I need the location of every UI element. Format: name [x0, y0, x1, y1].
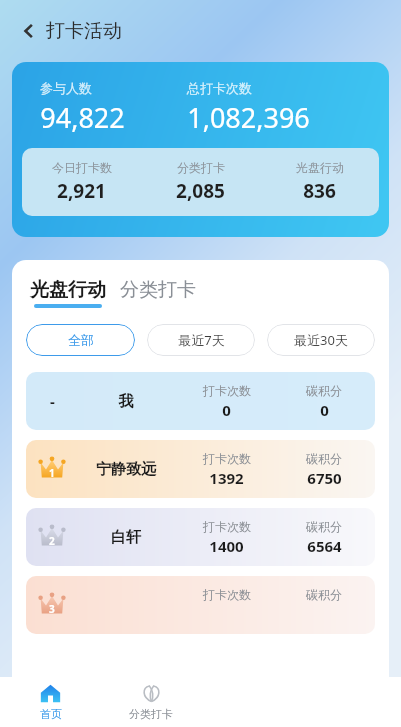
- staticText: 首页: [40, 707, 62, 721]
- staticText: 2,921: [57, 178, 106, 204]
- staticText: 94,822: [40, 99, 125, 136]
- staticText: 0: [320, 400, 329, 420]
- staticText: 836: [303, 178, 336, 204]
- button[interactable]: 全部: [26, 324, 135, 356]
- staticText: 打卡次数: [203, 519, 251, 534]
- staticText: 碳积分: [306, 451, 342, 466]
- staticText: 白轩: [78, 528, 174, 547]
- staticText: 全部: [68, 332, 94, 348]
- button[interactable]: -: [26, 372, 375, 430]
- staticText: 打卡次数: [203, 383, 251, 398]
- button[interactable]: 光盘行动: [30, 278, 106, 308]
- staticText: 打卡活动: [46, 19, 122, 43]
- staticText: 3: [49, 602, 55, 616]
- button[interactable]: 3: [26, 576, 375, 634]
- button[interactable]: 分类打卡: [101, 677, 201, 727]
- staticText: 6750: [307, 468, 342, 488]
- button[interactable]: Back: [14, 16, 44, 46]
- staticText: 最近30天: [294, 331, 348, 349]
- staticText: 分类打卡: [120, 278, 196, 302]
- staticText: 2: [49, 534, 55, 548]
- button[interactable]: 首页: [0, 677, 101, 727]
- staticText: 6564: [307, 536, 342, 556]
- staticText: 0: [222, 400, 231, 420]
- staticText: 分类打卡: [129, 707, 173, 721]
- staticText: 光盘行动: [296, 160, 344, 175]
- staticText: 宁静致远: [78, 460, 174, 479]
- staticText: 碳积分: [306, 519, 342, 534]
- staticText: 打卡次数: [203, 587, 251, 602]
- button[interactable]: 2: [26, 508, 375, 566]
- staticText: 分类打卡: [177, 160, 225, 175]
- staticText: 1,082,396: [187, 99, 310, 136]
- staticText: 光盘行动: [30, 278, 106, 302]
- button[interactable]: 最近30天: [267, 324, 375, 356]
- staticText: 碳积分: [306, 587, 342, 602]
- button[interactable]: 最近7天: [147, 324, 255, 356]
- staticText: 总打卡次数: [187, 80, 252, 96]
- button[interactable]: 1: [26, 440, 375, 498]
- staticText: 今日打卡数: [52, 160, 112, 175]
- staticText: -: [50, 391, 55, 411]
- staticText: 我: [78, 392, 174, 411]
- staticText: 2,085: [176, 178, 225, 204]
- staticText: 1392: [209, 468, 244, 488]
- staticText: 碳积分: [306, 383, 342, 398]
- button[interactable]: 分类打卡: [120, 278, 196, 308]
- staticText: 1: [49, 466, 55, 480]
- staticText: 打卡次数: [203, 451, 251, 466]
- staticText: 参与人数: [40, 80, 92, 96]
- staticText: 最近7天: [178, 331, 225, 349]
- staticText: 1400: [209, 536, 244, 556]
